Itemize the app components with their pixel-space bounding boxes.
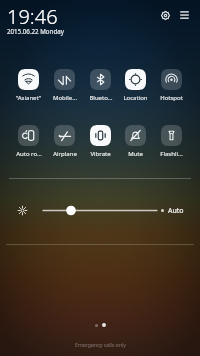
staticText: Mobile… (53, 94, 77, 102)
button[interactable]: Menu (177, 8, 192, 23)
staticText: Mute (128, 150, 143, 158)
staticText: Airplane (53, 150, 77, 158)
button[interactable]: Auto (158, 203, 187, 218)
button[interactable]: Brightness (17, 205, 28, 216)
button[interactable]: “Asianet” (11, 69, 46, 102)
staticText: Auto ro… (16, 150, 42, 158)
button[interactable]: Airplane (47, 125, 82, 158)
button[interactable]: Mute (118, 125, 153, 158)
button[interactable]: Location (118, 69, 153, 102)
staticText: Vibrate (90, 150, 111, 158)
staticText: Hotspot (160, 94, 183, 102)
staticText: Location (123, 94, 148, 102)
button[interactable]: Settings (157, 7, 173, 23)
button[interactable]: Hotspot (154, 69, 189, 102)
staticText: Blueto… (89, 94, 113, 102)
button[interactable]: Flashli… (154, 125, 189, 158)
staticText: Flashli… (160, 150, 183, 158)
button[interactable]: Blueto… (83, 69, 118, 102)
staticText: 2015.06.22 Monday (7, 27, 64, 35)
staticText: Auto (168, 206, 184, 216)
button[interactable]: Mobile… (47, 69, 82, 102)
staticText: Emergency calls only (75, 341, 126, 348)
button[interactable]: Vibrate (83, 125, 118, 158)
button[interactable]: Auto ro… (11, 125, 46, 158)
button[interactable] (38, 203, 162, 218)
staticText: “Asianet” (16, 94, 41, 102)
staticText: 19:46 (7, 3, 58, 30)
